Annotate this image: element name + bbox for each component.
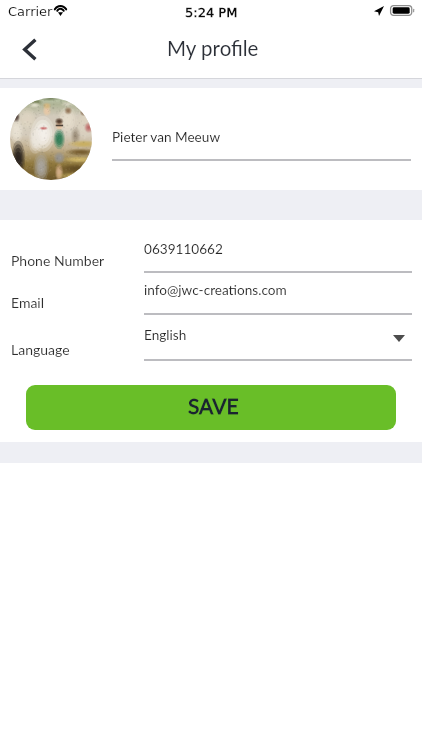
staticText: info@jwc-creations.com [144,282,287,298]
staticText: SAVE [188,393,239,418]
staticText: Carrier [8,4,53,19]
button[interactable]: SAVE [26,385,396,430]
staticText: Phone Number [11,252,105,269]
staticText: My profile [167,36,259,61]
button[interactable]: Profile photo [10,98,92,180]
staticText: Pieter van Meeuw [112,129,221,145]
staticText: Language [11,341,70,358]
button[interactable] [0,241,422,281]
button[interactable] [100,118,422,166]
button[interactable]: Back [8,27,52,71]
staticText: Email [11,294,45,311]
staticText: 0639110662 [144,241,223,257]
staticText: English [144,327,187,343]
button[interactable] [0,329,422,369]
button[interactable] [0,283,422,323]
staticText: 5:24 PM [185,5,238,20]
